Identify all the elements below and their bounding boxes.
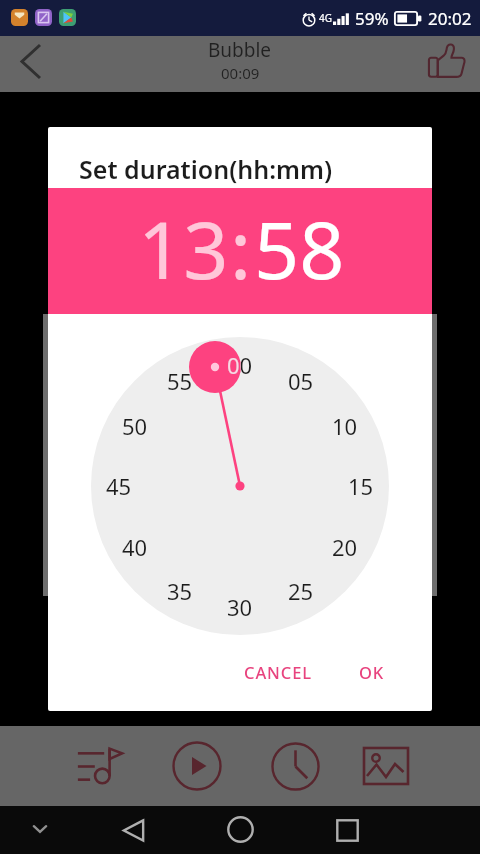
staticText: 00 xyxy=(227,350,253,380)
staticText: 55 xyxy=(167,366,193,396)
staticText: 20 xyxy=(332,532,358,562)
staticText: OK xyxy=(359,661,385,683)
staticText: 30 xyxy=(227,592,253,622)
staticText: 35 xyxy=(167,576,193,606)
button[interactable]: Timer xyxy=(255,726,335,806)
button[interactable]: OK xyxy=(351,652,393,692)
button[interactable]: Play xyxy=(157,726,237,806)
staticText: Bubble xyxy=(208,37,272,63)
button[interactable]: CANCEL xyxy=(236,652,320,692)
staticText: 25 xyxy=(288,576,314,606)
staticText: 00 xyxy=(227,350,253,380)
staticText: 10 xyxy=(332,411,358,441)
button[interactable]: Like xyxy=(418,36,480,92)
staticText: 00:09 xyxy=(221,63,260,83)
button[interactable]: Back xyxy=(106,806,160,854)
staticText: 13 xyxy=(138,195,229,303)
staticText: 58 xyxy=(254,195,345,303)
button[interactable]: Gallery xyxy=(346,726,426,806)
staticText: CANCEL xyxy=(244,661,312,683)
button[interactable]: Home xyxy=(213,805,267,853)
button[interactable]: Back xyxy=(0,36,62,92)
staticText: 15 xyxy=(348,471,374,501)
button[interactable]: Hide navigation bar xyxy=(13,805,67,853)
staticText: 05 xyxy=(288,366,314,396)
button[interactable]: Recents xyxy=(320,806,374,854)
staticText: 20:02 xyxy=(428,7,472,30)
staticText: 4G xyxy=(319,11,332,25)
button[interactable]: Playlist xyxy=(59,726,139,806)
staticText: 40 xyxy=(122,532,148,562)
staticText: 50 xyxy=(122,411,148,441)
staticText: Set duration(hh:mm) xyxy=(79,152,333,186)
staticText: 59% xyxy=(355,7,389,30)
staticText: : xyxy=(230,195,252,303)
staticText: 45 xyxy=(106,471,132,501)
